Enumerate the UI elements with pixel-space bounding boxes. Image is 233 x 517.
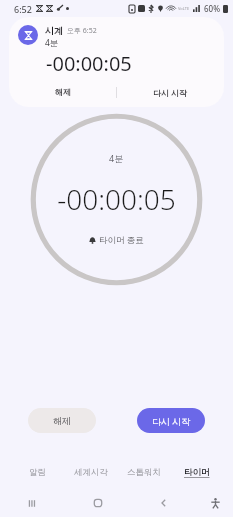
button[interactable]: Accessibility — [197, 489, 233, 517]
staticText: 다시 시작 — [152, 415, 191, 427]
staticText: -00:00:05 — [57, 180, 176, 218]
staticText: 오후 6:52 — [67, 26, 97, 36]
button[interactable]: 다시 시작 — [137, 408, 205, 433]
staticText: 4분 — [45, 37, 59, 49]
staticText: 다시 시작 — [153, 87, 188, 98]
staticText: 6:52 — [14, 3, 32, 15]
button[interactable]: 스톱워치 — [117, 461, 170, 483]
staticText: 타이머 — [184, 467, 210, 478]
staticText: 해제 — [53, 415, 71, 426]
staticText: 60% — [204, 3, 220, 14]
button[interactable]: Home — [65, 489, 131, 517]
button[interactable]: Back — [131, 489, 197, 517]
button[interactable]: 시계 — [9, 17, 224, 107]
staticText: VoLTE — [178, 6, 190, 11]
button[interactable]: 세계시각 — [64, 461, 117, 483]
staticText: 타이머 종료 — [99, 234, 144, 246]
staticText: 4분 — [109, 152, 124, 164]
button[interactable]: 타이머 — [170, 461, 223, 483]
button[interactable]: 다시 시작 — [117, 82, 224, 102]
staticText: 시계 — [45, 25, 63, 36]
staticText: 스톱워치 — [127, 467, 161, 478]
button[interactable]: Recents — [0, 489, 65, 517]
staticText: -00:00:05 — [46, 50, 132, 77]
staticText: 알림 — [29, 467, 46, 478]
button[interactable]: 해제 — [28, 408, 96, 433]
staticText: 세계시각 — [74, 467, 108, 478]
button[interactable]: 알림 — [10, 461, 64, 483]
staticText: 해제 — [55, 87, 71, 97]
button[interactable]: 해제 — [9, 82, 116, 102]
